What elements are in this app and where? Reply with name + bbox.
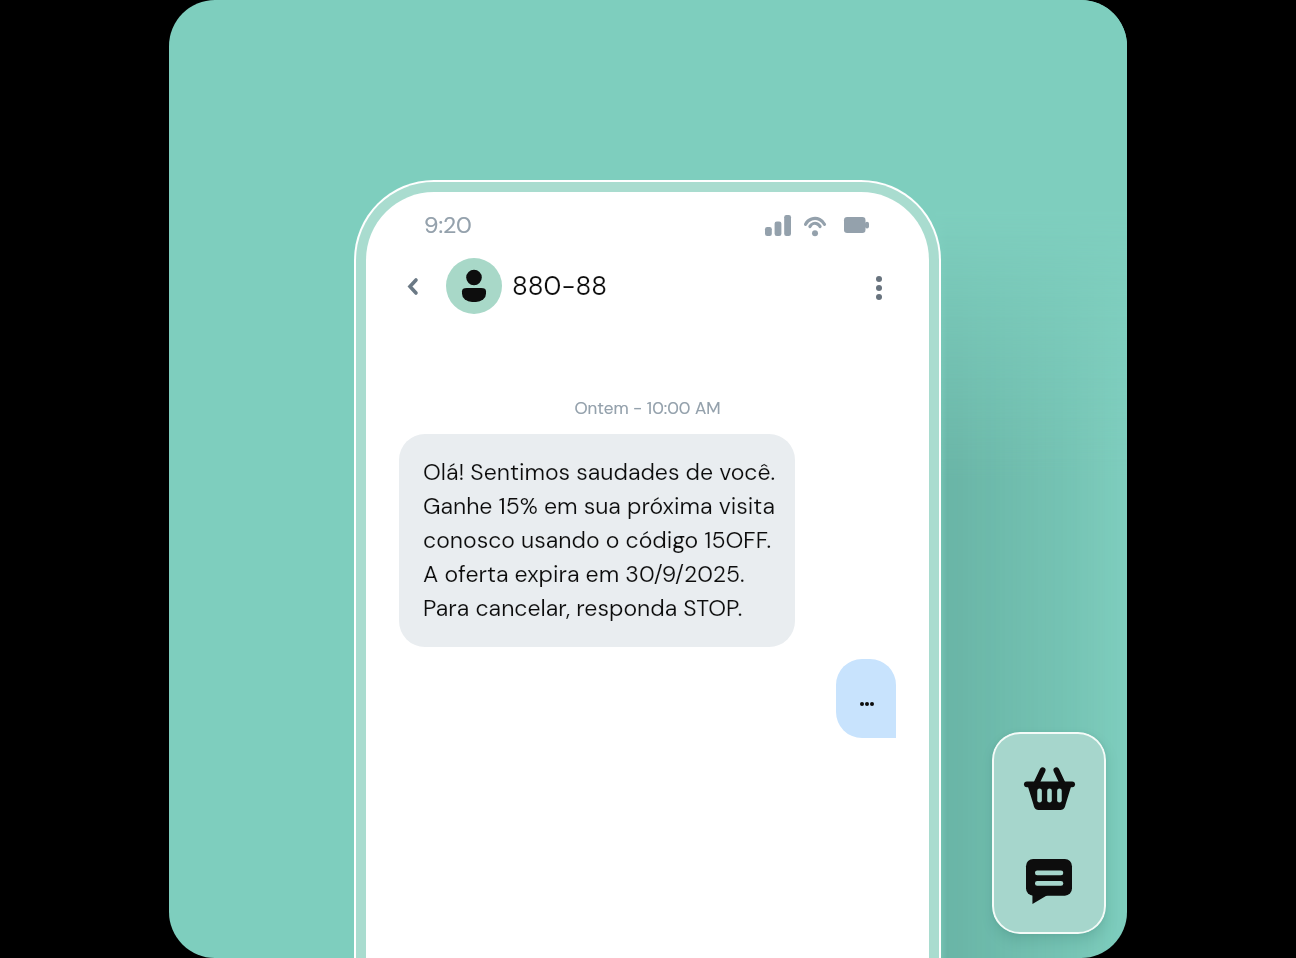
button[interactable]: Olá! Sentimos saudades de você. Ganhe 15… [399,434,795,647]
button[interactable]: More options [858,267,900,309]
staticText: Olá! Sentimos saudades de você. Ganhe 15… [423,457,783,623]
button[interactable]: Cart [992,750,1106,826]
button[interactable]: Back [394,267,432,305]
staticText: 9:20 [424,210,472,240]
staticText: Ontem - 10:00 AM [366,397,929,419]
staticText: 880-88 [512,269,608,303]
button[interactable]: Messages [992,843,1106,919]
button[interactable]: 880-88 [446,258,608,314]
